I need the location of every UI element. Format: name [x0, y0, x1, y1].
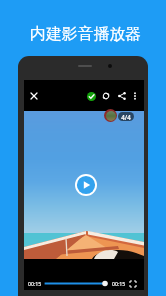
button[interactable]: Fullscreen [127, 278, 139, 290]
button[interactable]: Play [75, 174, 97, 196]
staticText: 4/4 [121, 113, 131, 121]
button[interactable]: Close [25, 87, 42, 104]
button[interactable]: Share [115, 89, 129, 103]
button[interactable]: More options [128, 89, 141, 102]
button[interactable]: Profile [104, 109, 117, 122]
staticText: 00:15 [112, 280, 126, 287]
staticText: 内建影音播放器 [30, 24, 142, 44]
staticText: 00:15 [28, 280, 42, 287]
button[interactable]: Done [84, 89, 98, 103]
button[interactable]: Repeat [99, 89, 113, 103]
